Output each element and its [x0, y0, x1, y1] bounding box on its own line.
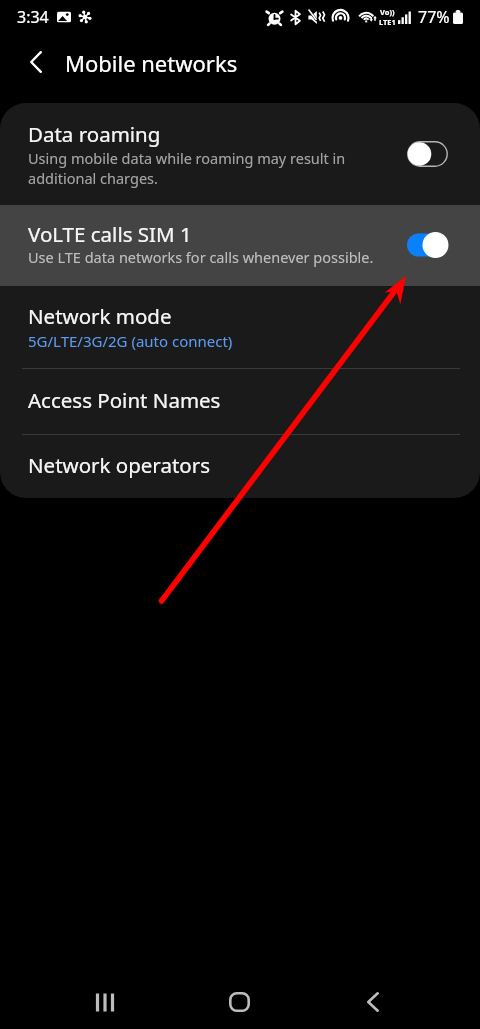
staticText: 77% — [418, 6, 450, 28]
button[interactable]: Toggle on — [400, 224, 456, 266]
button[interactable]: Recent apps — [69, 966, 141, 1029]
staticText: Use LTE data networks for calls whenever… — [28, 247, 374, 267]
staticText: Network operators — [28, 451, 211, 479]
button[interactable] — [0, 434, 480, 498]
button[interactable] — [0, 205, 480, 286]
button[interactable] — [0, 103, 480, 205]
staticText: Vo)) — [380, 7, 395, 17]
staticText: Data roaming — [28, 120, 161, 148]
staticText: 5G/LTE/3G/2G (auto connect) — [28, 331, 233, 351]
button[interactable]: Back — [337, 966, 409, 1029]
staticText: Mobile networks — [65, 48, 238, 78]
staticText: Network mode — [28, 302, 172, 330]
button[interactable] — [0, 286, 480, 368]
staticText: 3:34 — [17, 6, 49, 28]
button[interactable]: Home — [203, 966, 275, 1029]
staticText: LTE1 — [379, 17, 396, 27]
staticText: Access Point Names — [28, 386, 221, 414]
button[interactable]: Navigate up — [12, 38, 60, 86]
button[interactable]: Toggle off — [400, 133, 456, 175]
staticText: VoLTE calls SIM 1 — [28, 220, 192, 248]
staticText: additional charges. — [28, 168, 158, 188]
button[interactable] — [0, 368, 480, 434]
staticText: Using mobile data while roaming may resu… — [28, 148, 346, 168]
